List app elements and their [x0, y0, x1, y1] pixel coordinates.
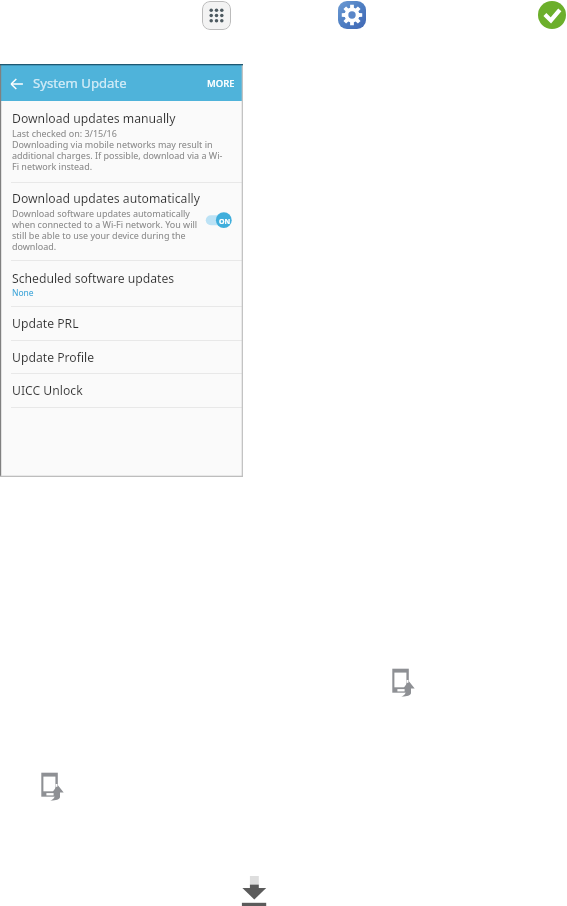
staticText: ON: [219, 217, 231, 227]
staticText: Last checked on: 3/15/16: [12, 127, 117, 139]
staticText: when connected to a Wi-Fi network. You w…: [12, 218, 198, 230]
button[interactable]: Done: [538, 1, 566, 29]
button[interactable]: Update PRL: [0, 305, 243, 336]
staticText: None: [12, 287, 34, 299]
staticText: additional charges. If possible, downloa…: [12, 149, 223, 161]
staticText: download.: [12, 240, 57, 252]
staticText: Download software updates automatically: [12, 207, 190, 219]
button[interactable]: Apps: [202, 1, 231, 30]
staticText: Downloading via mobile networks may resu…: [12, 138, 213, 150]
staticText: Fi network instead.: [12, 160, 93, 172]
button[interactable]: Settings: [338, 1, 366, 29]
button[interactable]: System update: [35, 770, 69, 804]
button[interactable]: Download updates automatically on: [203, 210, 234, 231]
staticText: Scheduled software updates: [12, 270, 175, 287]
staticText: Download updates manually: [12, 110, 176, 127]
staticText: Update Profile: [12, 349, 95, 366]
staticText: Update PRL: [12, 315, 79, 332]
button[interactable]: Download: [236, 868, 274, 906]
staticText: MORE: [207, 77, 235, 90]
button[interactable]: System update: [386, 666, 420, 700]
button[interactable]: Back: [10, 77, 24, 91]
button[interactable]: MORE: [207, 77, 235, 90]
staticText: Download updates automatically: [12, 190, 200, 207]
staticText: still be able to use your device during …: [12, 229, 186, 241]
button[interactable]: System Update: [33, 74, 127, 92]
button[interactable]: UICC Unlock: [0, 372, 243, 403]
button[interactable]: Update Profile: [0, 339, 243, 370]
staticText: UICC Unlock: [12, 382, 83, 399]
staticText: System Update: [33, 74, 127, 92]
